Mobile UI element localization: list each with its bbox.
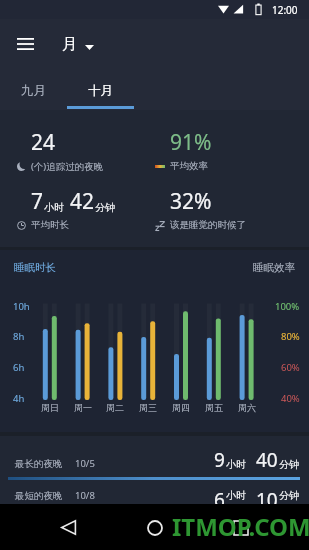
staticText: 100% xyxy=(275,300,300,313)
staticText: 十月 xyxy=(88,83,113,99)
staticText: 周四 xyxy=(172,402,190,413)
staticText: 小时 xyxy=(44,201,64,214)
staticText: 分钟 xyxy=(95,201,115,214)
staticText: 10/8 xyxy=(75,489,95,502)
staticText: 最长的夜晚 xyxy=(15,458,63,470)
staticText: 小时 xyxy=(226,489,246,502)
button[interactable]: Back xyxy=(46,505,91,550)
staticText: 4h xyxy=(13,392,25,405)
staticText: 周五 xyxy=(205,402,223,413)
staticText: 分钟 xyxy=(279,458,299,471)
staticText: 周二 xyxy=(106,402,124,413)
staticText: 12:00 xyxy=(272,3,298,17)
staticText: 60% xyxy=(281,361,300,374)
button[interactable]: Recent apps xyxy=(218,505,263,550)
staticText: 42 xyxy=(70,187,95,216)
staticText: 24 xyxy=(31,128,56,157)
staticText: 平均时长 xyxy=(31,219,69,231)
button[interactable]: 最短的夜晚 xyxy=(0,487,309,504)
button[interactable]: 91% xyxy=(155,128,309,172)
staticText: 80% xyxy=(281,330,300,343)
staticText: 周三 xyxy=(139,402,157,413)
button[interactable]: 24 xyxy=(0,128,155,173)
staticText: 40 xyxy=(256,447,278,473)
staticText: 32% xyxy=(170,187,212,216)
button[interactable]: 月 xyxy=(62,35,94,54)
staticText: 6h xyxy=(13,361,25,374)
staticText: 分钟 xyxy=(279,489,299,502)
button[interactable]: 最长的夜晚 xyxy=(0,436,309,481)
staticText: (个)追踪过的夜晚 xyxy=(31,160,104,173)
staticText: 睡眠时长 xyxy=(14,261,56,274)
staticText: 10h xyxy=(13,300,30,313)
staticText: 最短的夜晚 xyxy=(15,490,63,502)
staticText: 睡眠效率 xyxy=(253,261,295,274)
staticText: 6 xyxy=(214,487,225,504)
staticText: 周日 xyxy=(41,402,59,413)
staticText: 8h xyxy=(13,330,25,343)
staticText: 平均效率 xyxy=(170,160,208,172)
staticText: 该是睡觉的时候了 xyxy=(170,219,246,231)
button[interactable]: 7 xyxy=(0,187,155,231)
staticText: 40% xyxy=(281,392,300,405)
staticText: 小时 xyxy=(226,458,246,471)
staticText: 91% xyxy=(170,128,212,157)
button[interactable]: 十月 xyxy=(67,69,134,110)
staticText: 九月 xyxy=(21,83,46,99)
button[interactable]: Home xyxy=(132,505,177,550)
button[interactable]: 九月 xyxy=(0,69,67,110)
staticText: 10/5 xyxy=(75,457,95,470)
button[interactable]: 32% xyxy=(155,187,309,231)
staticText: 10 xyxy=(256,487,278,504)
staticText: 9 xyxy=(214,447,225,473)
staticText: ITMOP.COM xyxy=(172,510,309,543)
staticText: 月 xyxy=(62,35,77,54)
staticText: 周六 xyxy=(238,402,256,413)
staticText: 周一 xyxy=(74,402,92,413)
staticText: 7 xyxy=(31,187,44,216)
button[interactable]: Menu xyxy=(1,20,49,68)
